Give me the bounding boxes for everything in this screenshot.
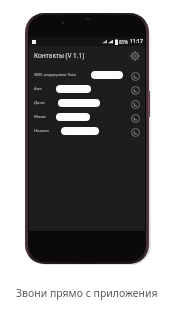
staticText: 11:17 [130, 38, 143, 45]
button[interactable]: Call [129, 126, 141, 138]
button[interactable]: SMS-поддержка Yota [29, 69, 145, 83]
button[interactable]: Call [129, 84, 141, 96]
button[interactable]: Call [129, 112, 141, 124]
staticText: Дани [34, 100, 45, 106]
button[interactable]: Settings [128, 49, 141, 62]
staticText: SMS-поддержка Yota [34, 72, 76, 78]
staticText: Мама [34, 114, 46, 120]
staticText: 85% [119, 39, 128, 45]
staticText: Контакты (V 1.1) [34, 51, 85, 60]
button[interactable]: Дани [29, 97, 145, 111]
button[interactable] [56, 113, 90, 121]
button[interactable]: Никита [29, 125, 145, 139]
button[interactable] [56, 85, 91, 93]
staticText: Звони прямо с приложения [16, 286, 158, 300]
staticText: Аня [34, 86, 42, 92]
button[interactable] [58, 99, 100, 107]
button[interactable]: Call [129, 98, 141, 110]
button[interactable] [61, 127, 99, 135]
staticText: Никита [34, 128, 49, 134]
button[interactable]: Call [129, 70, 141, 82]
button[interactable]: Аня [29, 83, 145, 97]
button[interactable]: Мама [29, 111, 145, 125]
button[interactable] [91, 71, 123, 79]
